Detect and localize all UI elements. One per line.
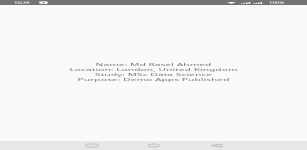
staticText: 100% bbox=[269, 1, 285, 4]
button[interactable]: Recent apps bbox=[69, 141, 115, 150]
staticText: 10:29 bbox=[14, 1, 30, 4]
staticText: Name: Md Rasel Ahmed Location: London, U… bbox=[69, 61, 238, 82]
button[interactable]: Home bbox=[131, 141, 177, 150]
button[interactable]: Back bbox=[193, 141, 239, 150]
